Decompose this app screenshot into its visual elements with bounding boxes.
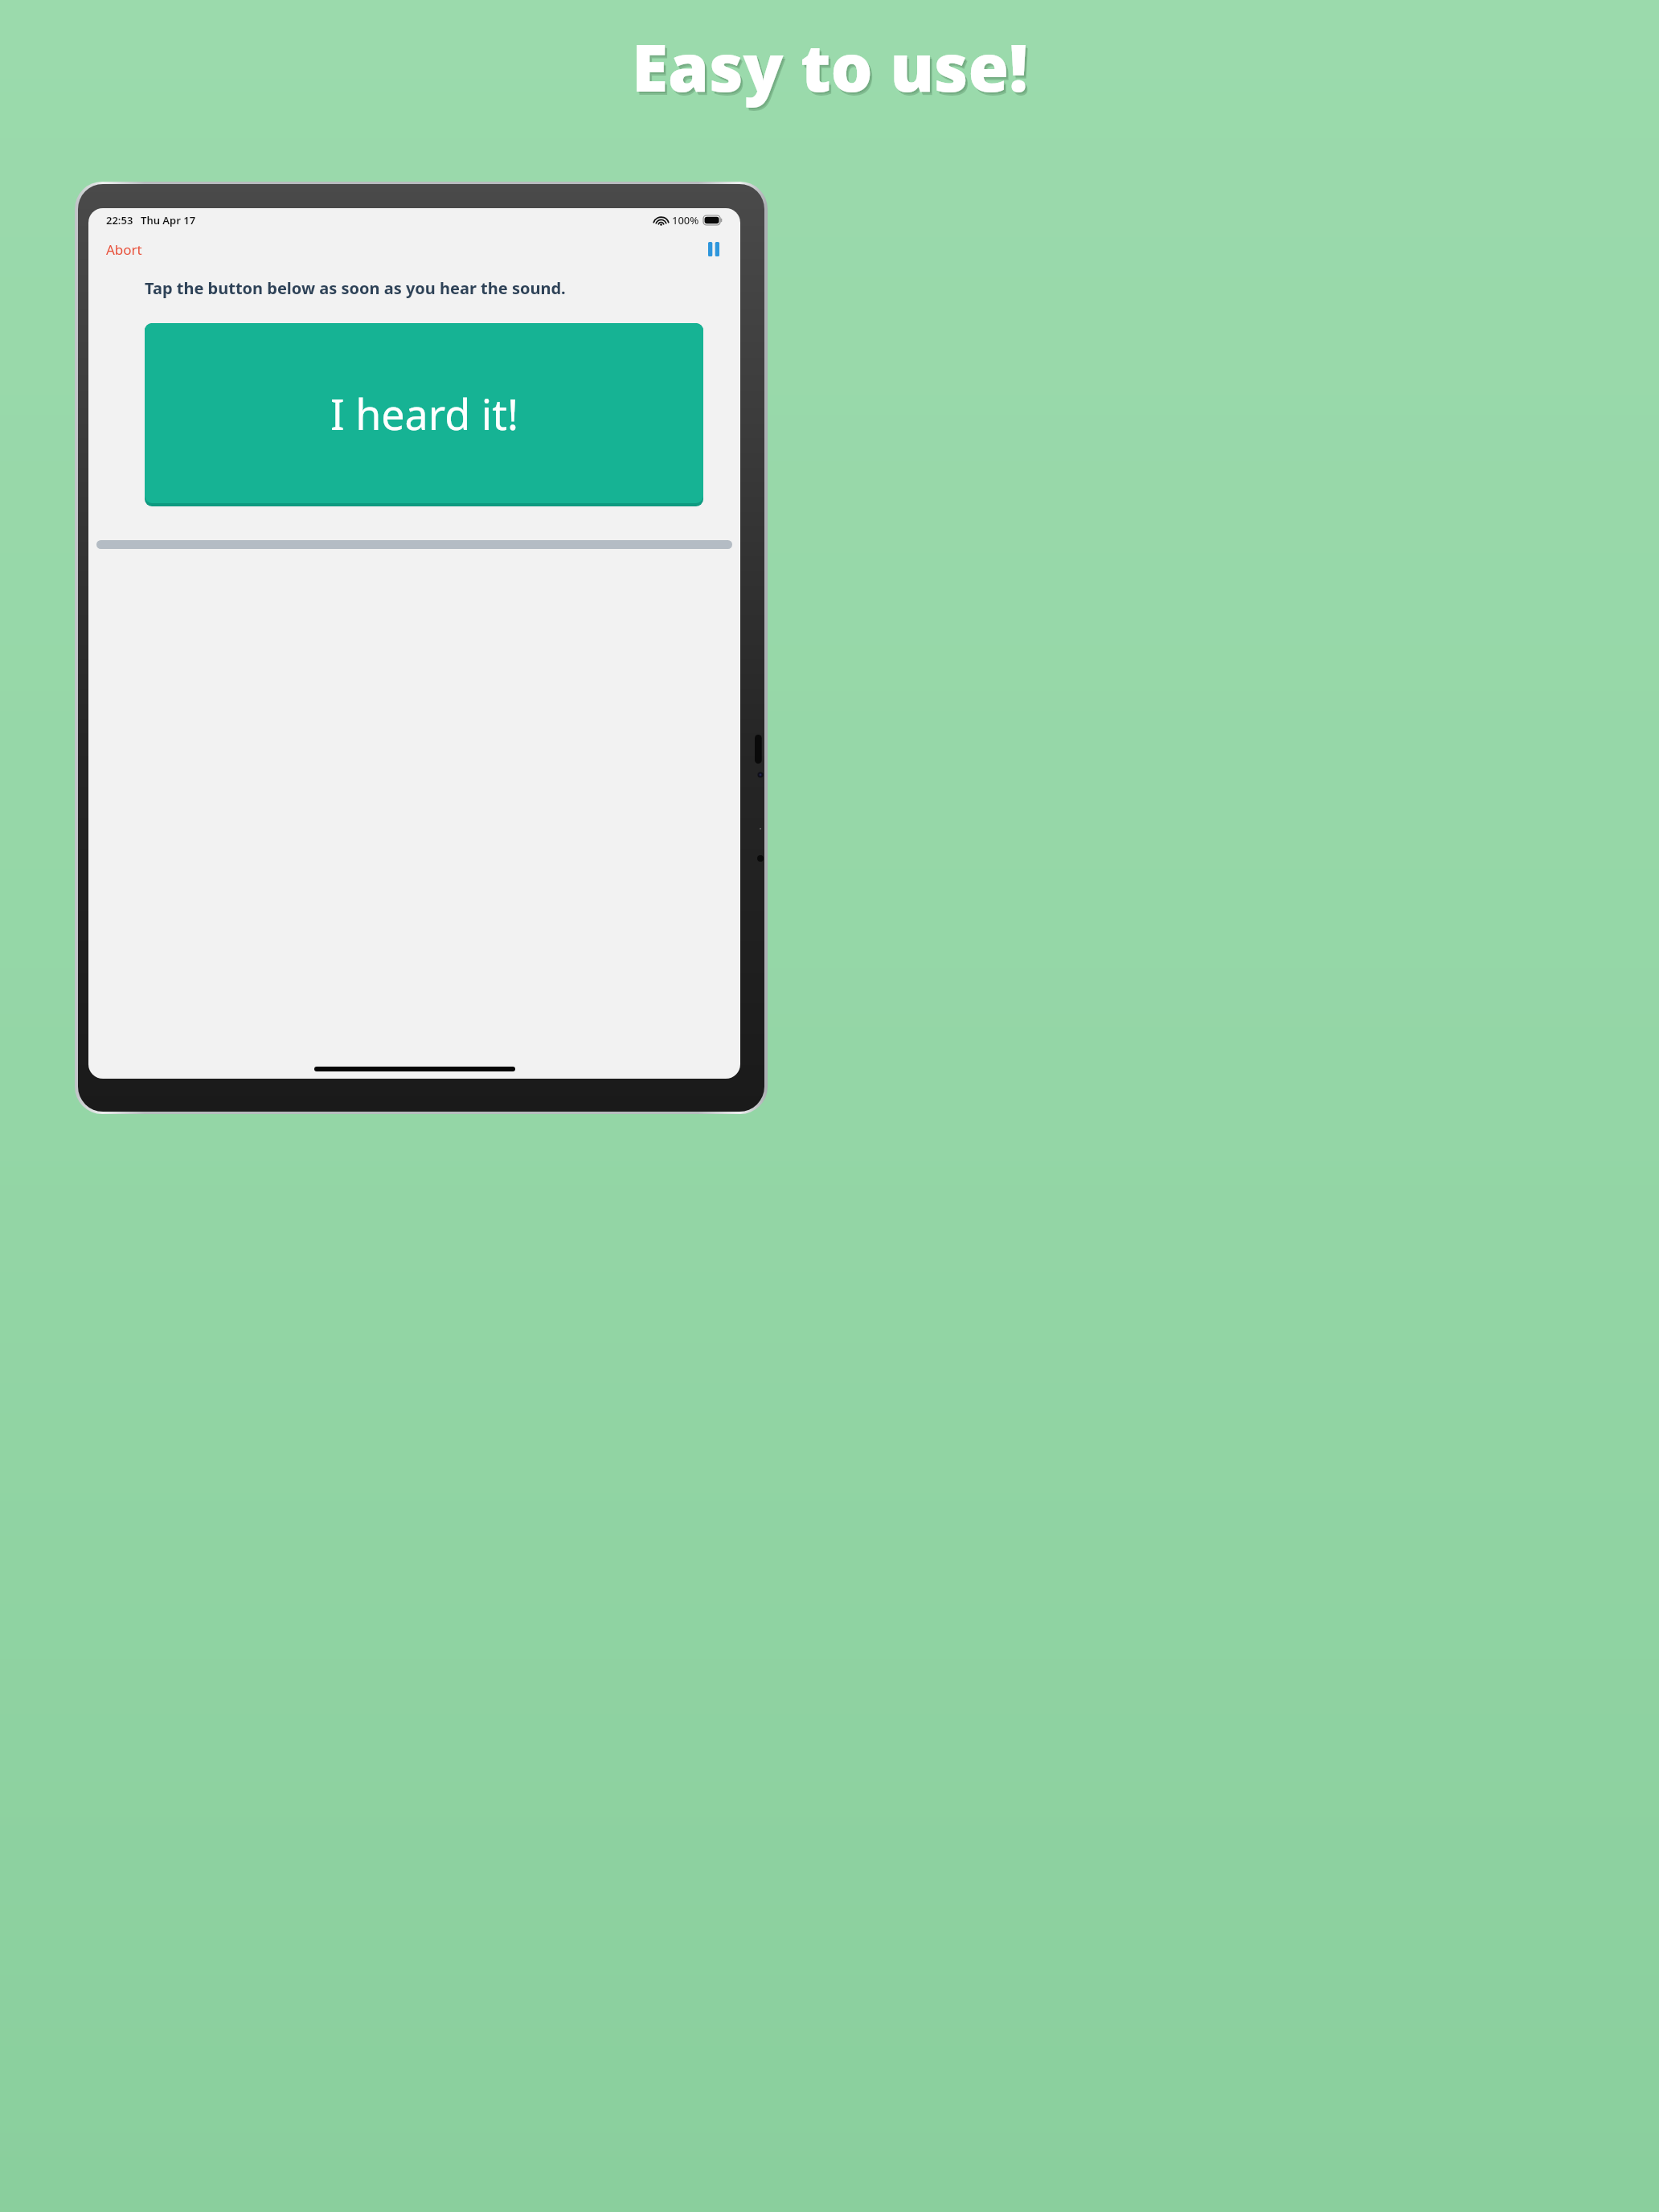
button[interactable]: I heard it! bbox=[145, 323, 703, 506]
staticText: Abort bbox=[106, 240, 142, 259]
staticText: I heard it! bbox=[330, 385, 518, 442]
staticText: Easy to use! bbox=[633, 23, 1030, 113]
staticText: Easy to use! bbox=[632, 21, 1028, 111]
staticText: Thu Apr 17 bbox=[141, 213, 196, 227]
staticText: Tap the button below as soon as you hear… bbox=[145, 277, 566, 299]
button[interactable]: Abort bbox=[101, 237, 147, 262]
button[interactable]: Pause bbox=[700, 236, 727, 263]
staticText: 22:53 bbox=[106, 213, 133, 227]
staticText: 100% bbox=[672, 213, 699, 227]
staticText: Easy to use! bbox=[634, 24, 1030, 114]
